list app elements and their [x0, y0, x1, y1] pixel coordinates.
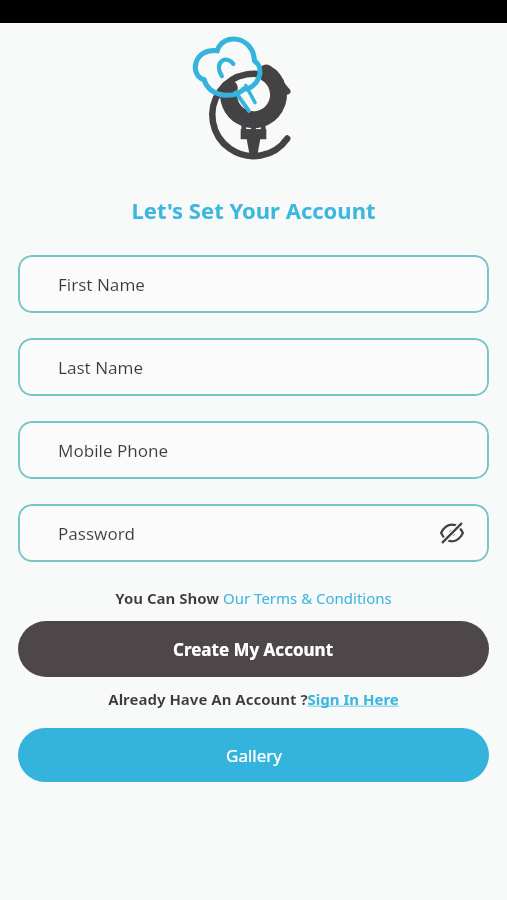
button[interactable]: First Name — [18, 255, 489, 313]
button[interactable]: Last Name — [18, 338, 489, 396]
staticText: Last Name — [58, 356, 144, 379]
staticText: Already Have An Account ?Sign In Here — [108, 689, 399, 709]
staticText: You Can Show Our Terms & Conditions — [115, 588, 392, 608]
button[interactable]: Show password — [437, 518, 467, 548]
button[interactable]: You Can Show Our Terms & Conditions — [0, 588, 507, 608]
staticText: Password — [58, 522, 135, 545]
button[interactable]: Gallery — [18, 728, 489, 782]
button[interactable]: Create My Account — [18, 621, 489, 677]
staticText: Mobile Phone — [58, 439, 169, 462]
staticText: Gallery — [226, 744, 282, 767]
staticText: Create My Account — [173, 638, 334, 661]
staticText: First Name — [58, 273, 145, 296]
button[interactable]: Already Have An Account ?Sign In Here — [0, 689, 507, 709]
staticText: Let's Set Your Account — [131, 195, 376, 225]
button[interactable]: Password — [18, 504, 489, 562]
button[interactable]: Mobile Phone — [18, 421, 489, 479]
